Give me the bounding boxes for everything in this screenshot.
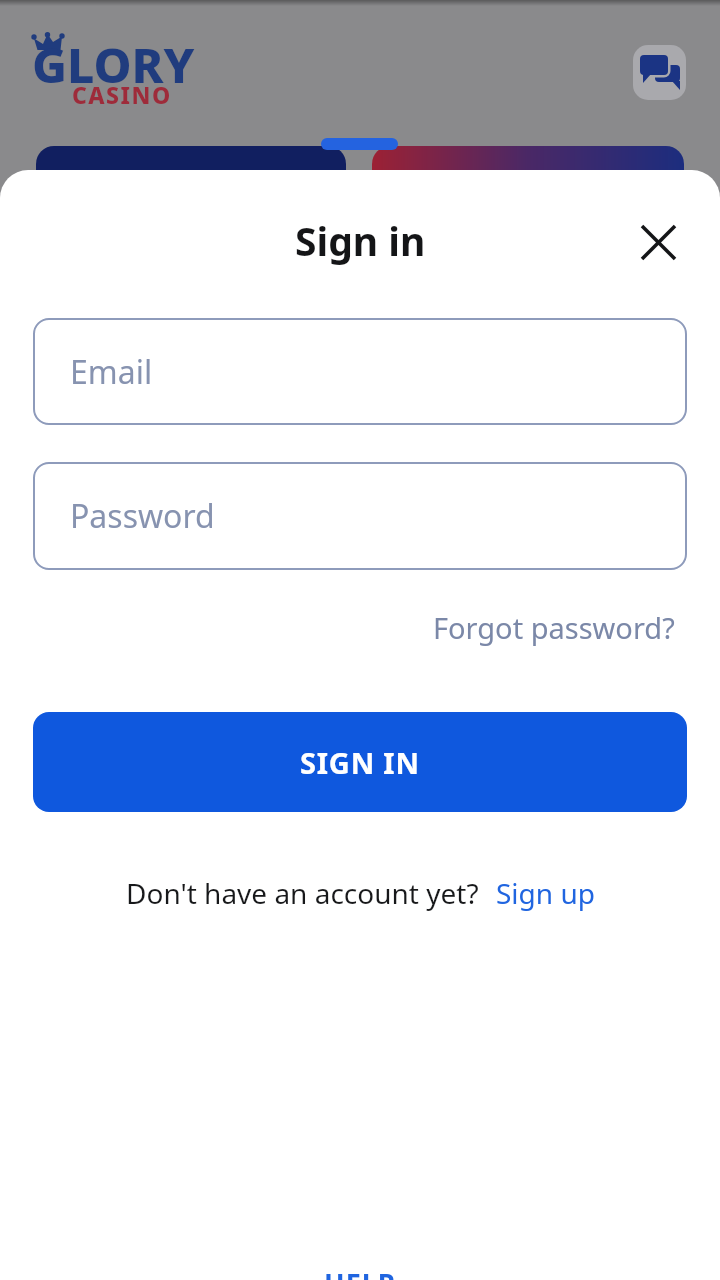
staticText: CASINO	[72, 79, 172, 110]
staticText: GLORY	[32, 32, 195, 97]
staticText: Don't have an account yet?	[126, 874, 479, 912]
staticText: Password	[70, 494, 215, 538]
button[interactable]: Email	[33, 318, 687, 425]
button[interactable]: Password	[33, 462, 687, 570]
button[interactable]	[628, 212, 688, 272]
button[interactable]: SIGN IN	[33, 712, 687, 812]
button[interactable]: Forgot password?	[433, 608, 675, 647]
button[interactable]: Sign up	[496, 874, 595, 912]
button[interactable]: HELP	[324, 1264, 396, 1280]
staticText: Sign in	[295, 214, 426, 267]
staticText: SIGN IN	[300, 743, 420, 782]
button[interactable]	[633, 45, 686, 100]
staticText: Email	[70, 350, 153, 394]
